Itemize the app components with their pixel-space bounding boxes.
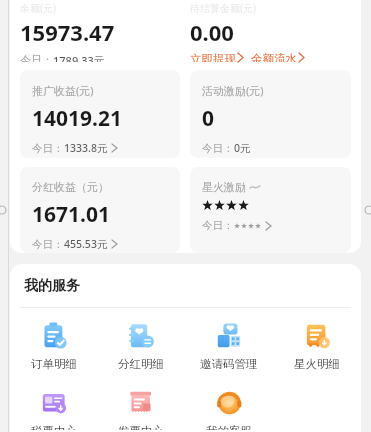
other: 分红明细 (127, 322, 155, 350)
other: 星火明细 (303, 322, 331, 350)
staticText: 1671.01 (32, 200, 110, 229)
button[interactable]: 订单明细 (10, 320, 97, 373)
staticText: 我的服务 (24, 277, 80, 295)
staticText: 订单明细 (31, 357, 77, 371)
staticText: 0元 (234, 141, 251, 155)
staticText: 1333.8元 (64, 141, 108, 155)
button[interactable]: 星火明细 (273, 320, 361, 373)
staticText: 推广收益(元) (32, 83, 94, 98)
staticText: 活动激励(元) (202, 83, 264, 98)
button[interactable]: 推广收益(元) (20, 70, 180, 158)
button[interactable]: 税票中心 (10, 387, 97, 432)
staticText: 星火激励 (202, 180, 246, 194)
other: 邀请码管理 (215, 322, 243, 350)
staticText: 今日： (202, 142, 234, 155)
staticText: 分红明细 (118, 357, 164, 371)
other: 税票中心 (40, 389, 68, 417)
staticText: 邀请码管理 (200, 357, 258, 371)
staticText: 我的客服 (206, 424, 252, 430)
button[interactable]: 邀请码管理 (185, 320, 273, 373)
staticText: 今日： (20, 53, 53, 62)
button[interactable]: 余额流水 (251, 52, 297, 62)
button[interactable]: 发票中心 (97, 387, 185, 432)
staticText: 星火明细 (294, 357, 340, 371)
staticText: 455.53元 (64, 237, 108, 251)
button[interactable]: 星火激励 (190, 167, 351, 253)
button[interactable]: 立即提现 (190, 52, 236, 62)
staticText: 今日： (202, 219, 234, 232)
staticText: 15973.47 (20, 17, 115, 47)
button[interactable]: 我的客服 (185, 387, 273, 432)
staticText: 14019.21 (32, 104, 122, 133)
staticText: 今日： (32, 142, 64, 155)
staticText: 余额(元) (20, 1, 56, 15)
other: 我的客服 (215, 389, 243, 417)
staticText: 发票中心 (118, 424, 164, 430)
staticText: 待结算金额(元) (190, 1, 256, 15)
other: 订单明细 (40, 322, 68, 350)
staticText: 1789.33元 (53, 53, 105, 62)
staticText: 分红收益（元） (32, 180, 109, 194)
button[interactable]: 分红明细 (97, 320, 185, 373)
button[interactable]: 活动激励(元) (190, 70, 351, 158)
button[interactable]: 分红收益（元） (20, 167, 180, 253)
staticText: 今日： (32, 238, 64, 251)
staticText: 0.00 (190, 17, 234, 47)
staticText: 税票中心 (31, 424, 77, 430)
staticText: 0 (202, 104, 215, 133)
other: 发票中心 (127, 389, 155, 417)
button[interactable]: 余额(元) (20, 0, 180, 62)
